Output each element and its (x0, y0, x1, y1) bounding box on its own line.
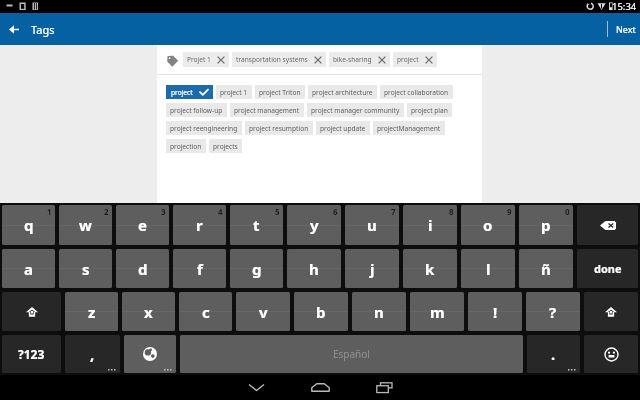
button[interactable]: project update (316, 121, 370, 135)
staticText: t (253, 215, 260, 235)
button[interactable]: , (65, 335, 120, 373)
button[interactable]: v (236, 292, 290, 331)
staticText: 7 (391, 206, 396, 217)
button[interactable]: l (461, 249, 515, 288)
button[interactable]: e (116, 205, 169, 245)
button[interactable]: s (59, 249, 112, 288)
staticText: f (197, 259, 203, 279)
button[interactable]: Next (608, 13, 640, 45)
staticText: bike-sharing (333, 55, 372, 64)
button[interactable]: Change language (124, 335, 176, 373)
button[interactable]: project (166, 85, 213, 99)
staticText: l (486, 259, 491, 279)
button[interactable]: . (527, 335, 580, 373)
button[interactable]: o (461, 205, 515, 245)
button[interactable]: ?123 (2, 335, 61, 373)
button[interactable]: b (294, 292, 348, 331)
button[interactable]: Home (288, 375, 352, 400)
button[interactable]: Back (0, 13, 28, 45)
button[interactable]: bike-sharing (329, 52, 390, 67)
button[interactable]: Shift (2, 292, 61, 331)
button[interactable]: f (173, 249, 226, 288)
staticText: Next (616, 23, 636, 35)
button[interactable]: c (179, 292, 232, 331)
button[interactable]: p (519, 205, 573, 245)
staticText: i (428, 215, 433, 235)
button[interactable]: n (352, 292, 406, 331)
staticText: ? (549, 302, 557, 322)
staticText: 9 (507, 206, 512, 217)
staticText: 5 (275, 206, 280, 217)
button[interactable]: r (173, 205, 226, 245)
staticText: project plan (411, 106, 448, 115)
button[interactable]: w (59, 205, 112, 245)
button[interactable]: project collaboration (380, 85, 453, 99)
staticText: Tags (31, 22, 55, 37)
staticText: w (79, 215, 92, 235)
button[interactable]: q (2, 205, 55, 245)
staticText: 0 (565, 206, 570, 217)
button[interactable]: m (410, 292, 464, 331)
staticText: 8 (449, 206, 454, 217)
button[interactable]: Back (224, 375, 288, 400)
staticText: c (202, 302, 210, 322)
staticText: m (430, 302, 445, 322)
staticText: project (171, 88, 193, 97)
staticText: k (425, 259, 435, 279)
button[interactable]: project follow-up (166, 103, 227, 117)
staticText: n (374, 302, 384, 322)
button[interactable]: i (403, 205, 457, 245)
button[interactable]: project 1 (216, 85, 252, 99)
staticText: h (309, 259, 319, 279)
button[interactable]: ñ (519, 249, 573, 288)
button[interactable]: project plan (407, 103, 452, 117)
staticText: a (24, 259, 33, 279)
button[interactable]: h (287, 249, 341, 288)
button[interactable]: projectManagement (373, 121, 445, 135)
button[interactable]: Projet 1 (183, 52, 229, 67)
staticText: 15:34 (612, 0, 637, 13)
staticText: project management (234, 106, 300, 115)
button[interactable]: ! (468, 292, 522, 331)
button[interactable]: k (403, 249, 457, 288)
button[interactable]: project reengineering (166, 121, 242, 135)
staticText: p (541, 215, 551, 235)
button[interactable]: project resumption (245, 121, 313, 135)
button[interactable]: d (116, 249, 169, 288)
button[interactable]: project architecture (308, 85, 377, 99)
button[interactable]: project manager community (307, 103, 404, 117)
button[interactable]: u (345, 205, 399, 245)
button[interactable]: Emoji (584, 335, 638, 373)
staticText: y (310, 215, 319, 235)
button[interactable]: projects (209, 139, 242, 153)
button[interactable]: ? (526, 292, 580, 331)
button[interactable]: Español (180, 335, 523, 373)
button[interactable]: x (122, 292, 175, 331)
staticText: . (551, 344, 556, 364)
button[interactable]: Backspace (577, 205, 638, 245)
button[interactable]: project Triton (255, 85, 305, 99)
staticText: 2 (104, 206, 109, 217)
button[interactable]: projection (166, 139, 206, 153)
staticText: project reengineering (170, 124, 238, 133)
staticText: 3 (161, 206, 166, 217)
button[interactable]: g (230, 249, 283, 288)
button[interactable]: project management (230, 103, 304, 117)
button[interactable]: j (345, 249, 399, 288)
button[interactable]: t (230, 205, 283, 245)
button[interactable]: y (287, 205, 341, 245)
staticText: u (367, 215, 377, 235)
button[interactable]: transportation systems (232, 52, 326, 67)
staticText: project resumption (249, 124, 309, 133)
staticText: project architecture (312, 88, 373, 97)
button[interactable]: z (65, 292, 118, 331)
staticText: projection (170, 142, 202, 151)
staticText: projects (213, 142, 238, 151)
button[interactable]: Recent apps (352, 375, 416, 400)
button[interactable]: project (393, 52, 437, 67)
button[interactable]: done (577, 249, 638, 288)
staticText: Español (333, 347, 370, 361)
button[interactable]: a (2, 249, 55, 288)
staticText: g (252, 259, 262, 279)
button[interactable]: Shift (584, 292, 638, 331)
